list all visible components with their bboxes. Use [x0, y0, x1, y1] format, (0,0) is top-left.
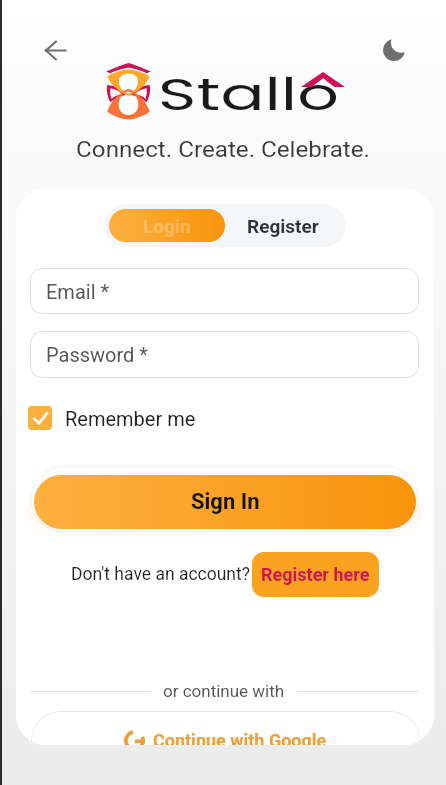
staticText: Password * [46, 343, 148, 366]
staticText: Register here [261, 564, 370, 585]
staticText: Remember me [65, 407, 196, 430]
staticText: Email * [46, 280, 110, 303]
button[interactable]: Email * [30, 268, 419, 314]
button[interactable]: Register [225, 209, 341, 242]
staticText: or continue with [163, 681, 285, 701]
staticText: Stallo [158, 63, 340, 126]
staticText: Connect. Create. Celebrate. [0, 137, 446, 163]
button[interactable]: Continue with Google [31, 711, 420, 745]
button[interactable]: Toggle dark mode [374, 30, 414, 70]
button[interactable]: Register here [252, 552, 379, 597]
button[interactable]: Login [109, 209, 225, 242]
button[interactable]: Back [35, 30, 75, 70]
staticText: Don't have an account? [71, 564, 251, 585]
staticText: Register [247, 215, 319, 237]
staticText: Sign In [191, 489, 260, 515]
staticText: Login [143, 215, 191, 237]
button[interactable]: Remember me [28, 406, 196, 430]
button[interactable]: Sign In [34, 475, 416, 529]
staticText: Continue with Google [153, 730, 327, 745]
button[interactable]: Password * [30, 331, 419, 378]
